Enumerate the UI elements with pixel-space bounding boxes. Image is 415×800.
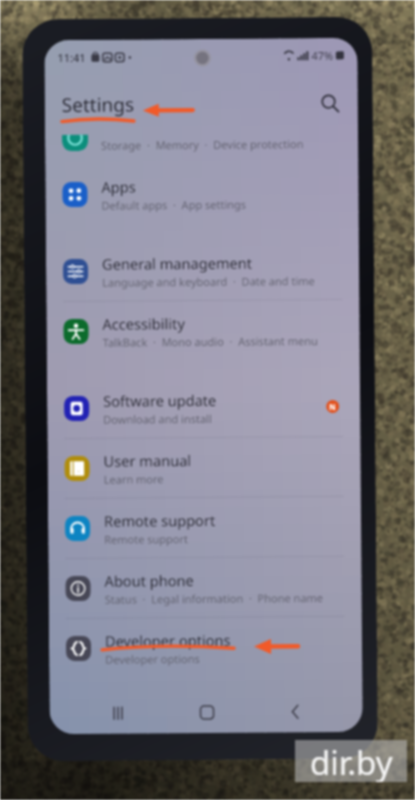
button[interactable]: Back	[274, 691, 315, 731]
staticText: 47%	[311, 48, 333, 63]
button[interactable]: General management	[46, 240, 359, 301]
staticText: User manual	[103, 450, 192, 471]
button[interactable]: Search	[314, 87, 346, 119]
button[interactable]: Accessibility	[46, 300, 360, 361]
button[interactable]: About phone	[48, 557, 362, 618]
staticText: N	[329, 401, 336, 412]
staticText: Default apps · App settings	[101, 197, 247, 213]
button[interactable]: Recents	[97, 692, 138, 733]
staticText: Download and install	[103, 411, 212, 427]
staticText: Settings	[62, 91, 135, 118]
button[interactable]: Developer options	[49, 617, 362, 678]
staticText: TalkBack · Mono audio · Assistant menu	[103, 333, 319, 350]
staticText: Apps	[101, 176, 136, 197]
staticText: Remote support	[104, 531, 188, 547]
staticText: Language and keyboard · Date and time	[102, 273, 315, 290]
button[interactable]: Apps	[45, 163, 359, 224]
staticText: Status · Legal information · Phone name	[105, 590, 324, 607]
button[interactable]: User manual	[47, 437, 361, 498]
button[interactable]: Remote support	[48, 497, 361, 558]
staticText: Learn more	[104, 471, 164, 487]
staticText: General management	[102, 253, 252, 274]
staticText: Developer options	[105, 630, 231, 651]
staticText: Developer options	[105, 651, 200, 667]
button[interactable]: Home	[186, 692, 227, 732]
button[interactable]: Software update	[47, 377, 360, 438]
staticText: dir.by	[310, 740, 393, 782]
staticText: About phone	[104, 570, 195, 591]
staticText: 11:41	[57, 50, 86, 65]
staticText: Accessibility	[102, 313, 186, 334]
staticText: Storage · Memory · Device protection	[101, 136, 304, 153]
staticText: Remote support	[104, 510, 216, 531]
staticText: Software update	[103, 390, 217, 411]
